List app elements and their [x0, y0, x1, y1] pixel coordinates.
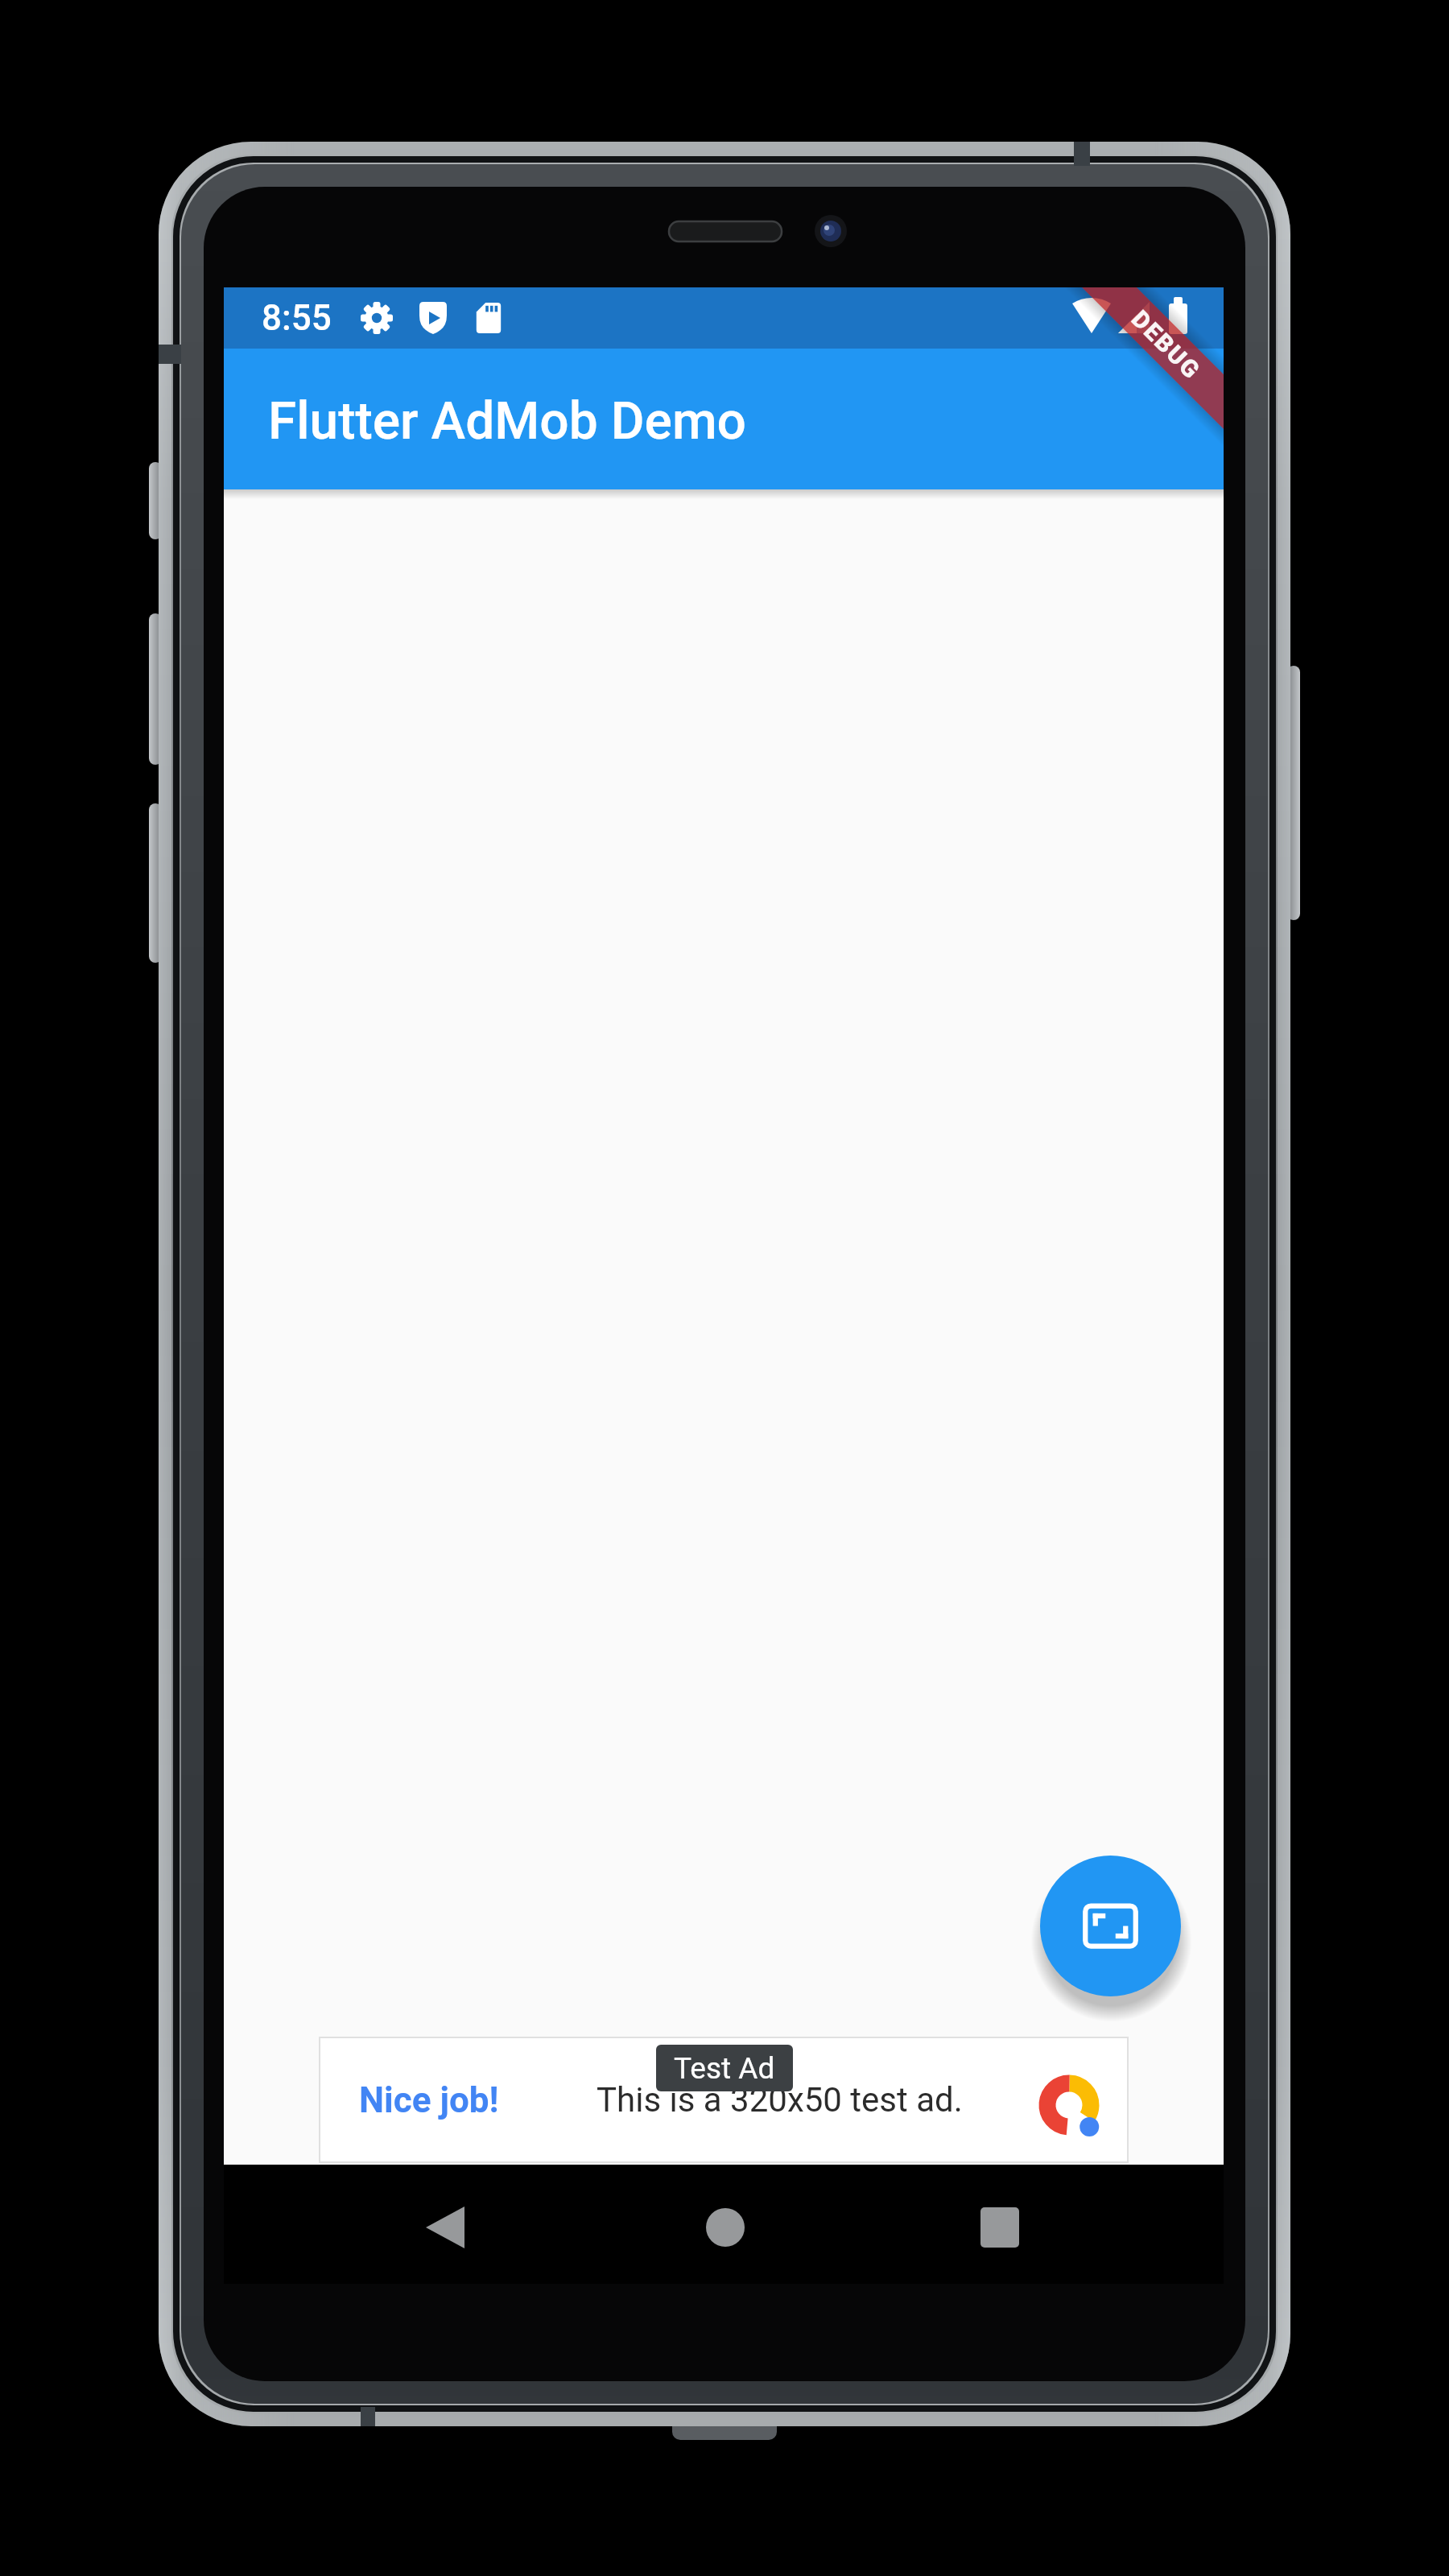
staticText: Nice job!	[359, 2079, 499, 2121]
staticText: This is a 320x50 test ad.	[597, 2080, 963, 2120]
staticText: DEBUG	[1126, 305, 1206, 385]
staticText: Flutter AdMob Demo	[268, 391, 747, 452]
staticText: 8:55	[262, 297, 332, 339]
staticText: Test Ad	[674, 2051, 775, 2086]
